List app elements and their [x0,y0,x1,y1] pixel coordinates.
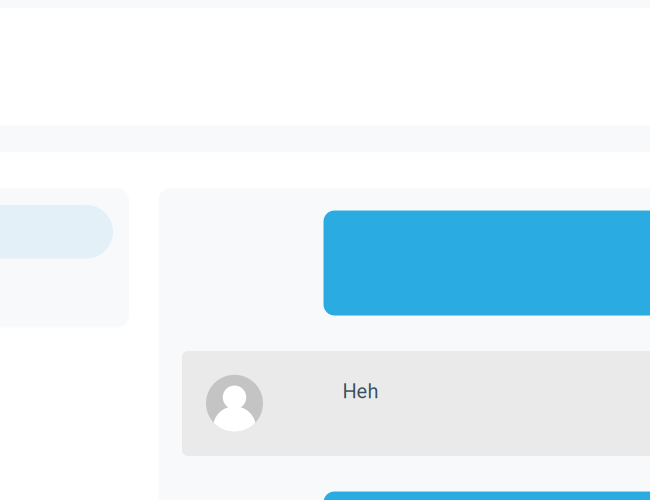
staticText: Heh [342,380,378,403]
button[interactable]: Conversation [0,205,113,258]
button[interactable]: Heh [182,351,650,456]
button[interactable]: Sent message [323,210,650,315]
button[interactable]: Sent message [323,491,650,500]
